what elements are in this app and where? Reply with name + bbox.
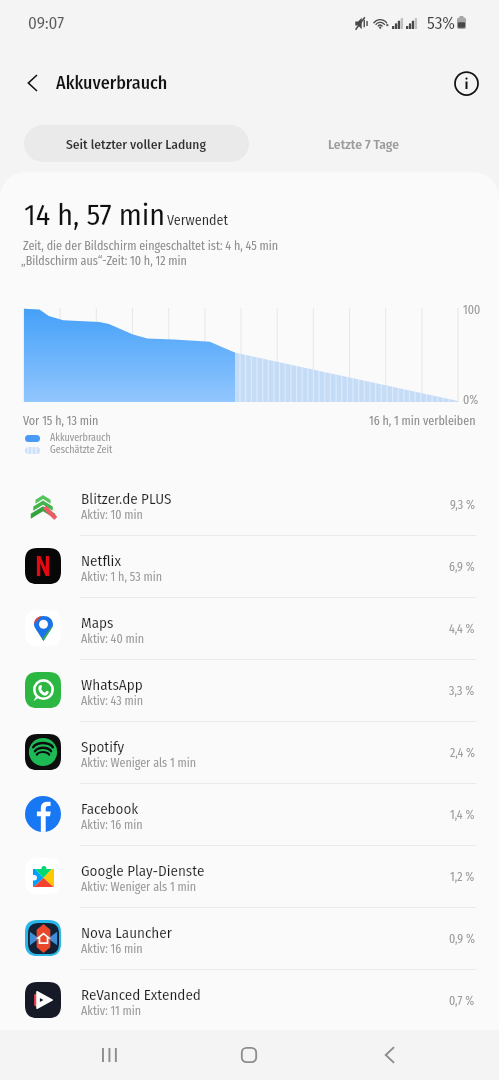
staticText: Seit letzter voller Ladung xyxy=(66,136,207,152)
staticText: 2,4 % xyxy=(450,746,475,760)
staticText: WhatsApp xyxy=(81,676,143,694)
staticText: Blitzer.de PLUS xyxy=(81,490,172,508)
button[interactable]: Maps xyxy=(0,597,499,659)
button[interactable]: Spotify xyxy=(0,721,499,783)
staticText: Aktiv: Weniger als 1 min xyxy=(81,756,197,770)
button[interactable]: Zurück xyxy=(12,62,54,104)
staticText: Nova Launcher xyxy=(81,924,172,942)
staticText: Maps xyxy=(81,614,114,632)
button[interactable]: Facebook xyxy=(0,783,499,845)
staticText: Aktiv: 16 min xyxy=(81,818,143,832)
staticText: Geschätzte Zeit xyxy=(50,444,113,456)
staticText: 1,2 % xyxy=(450,870,475,884)
staticText: Vor 15 h, 13 min xyxy=(23,414,99,428)
button[interactable]: Startbildschirm xyxy=(221,1036,277,1074)
staticText: ReVanced Extended xyxy=(81,986,201,1004)
staticText: Zeit, die der Bildschirm eingeschaltet i… xyxy=(23,239,279,253)
button[interactable]: Seit letzter voller Ladung xyxy=(24,125,249,162)
staticText: Netflix xyxy=(81,552,121,570)
button[interactable]: ReVanced Extended xyxy=(0,969,499,1030)
staticText: 6,9 % xyxy=(449,560,475,574)
button[interactable]: Google Play-Dienste xyxy=(0,845,499,907)
button[interactable]: Nova Launcher xyxy=(0,907,499,969)
staticText: 53% xyxy=(427,13,456,33)
staticText: Aktiv: 11 min xyxy=(81,1004,142,1018)
staticText: „Bildschirm aus“-Zeit: 10 h, 12 min xyxy=(21,254,187,268)
button[interactable]: Information xyxy=(446,63,486,103)
button[interactable]: Zurück xyxy=(361,1036,417,1074)
staticText: Aktiv: 1 h, 53 min xyxy=(81,570,162,584)
staticText: Aktiv: 16 min xyxy=(81,942,143,956)
staticText: 0,9 % xyxy=(449,932,475,946)
staticText: Spotify xyxy=(81,738,125,756)
staticText: Akkuverbrauch xyxy=(50,432,111,444)
button[interactable]: WhatsApp xyxy=(0,659,499,721)
staticText: Akkuverbrauch xyxy=(56,72,168,94)
button[interactable]: Letzte Apps xyxy=(81,1036,137,1074)
staticText: Verwendet xyxy=(167,212,229,229)
staticText: 0,7 % xyxy=(449,994,475,1008)
staticText: 14 h, 57 min xyxy=(24,197,166,233)
staticText: 1,4 % xyxy=(450,808,475,822)
staticText: 9,3 % xyxy=(450,498,475,512)
staticText: 09:07 xyxy=(28,13,65,33)
staticText: Aktiv: 10 min xyxy=(81,508,143,522)
staticText: Google Play-Dienste xyxy=(81,862,205,880)
staticText: 3,3 % xyxy=(449,684,475,698)
staticText: Aktiv: Weniger als 1 min xyxy=(81,880,197,894)
button[interactable]: Blitzer.de PLUS xyxy=(0,473,499,535)
staticText: Aktiv: 40 min xyxy=(81,632,145,646)
button[interactable]: Netflix xyxy=(0,535,499,597)
staticText: Aktiv: 43 min xyxy=(81,694,144,708)
staticText: 100 xyxy=(463,303,481,317)
staticText: 4,4 % xyxy=(449,622,475,636)
staticText: Facebook xyxy=(81,800,139,818)
button[interactable]: Letzte 7 Tage xyxy=(250,125,476,162)
staticText: 0% xyxy=(463,393,479,407)
staticText: Letzte 7 Tage xyxy=(328,136,399,152)
staticText: 16 h, 1 min verbleiben xyxy=(369,414,476,428)
